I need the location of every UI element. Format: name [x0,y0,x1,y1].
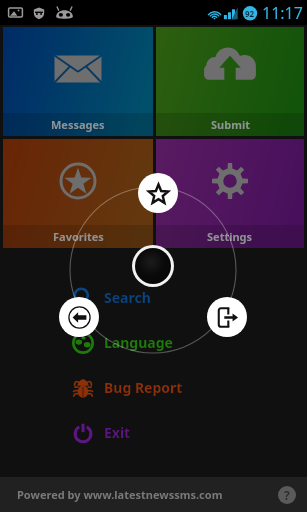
button[interactable]: Search [0,275,307,320]
staticText: Messages [51,117,105,132]
staticText: Bug Report [104,378,183,397]
button[interactable]: Close menu [132,245,174,287]
staticText: Settings [207,229,253,244]
button[interactable]: Messages [3,27,153,136]
staticText: Submit [211,117,250,132]
staticText: Language [104,333,173,352]
button[interactable]: Language [0,320,307,365]
button[interactable]: Log out [207,297,247,337]
button[interactable]: Help [278,486,296,504]
staticText: Favorites [53,229,104,244]
button[interactable]: Bug Report [0,365,307,410]
button[interactable]: Back [59,297,99,337]
staticText: Exit [104,423,131,442]
button[interactable]: Submit [156,27,304,136]
button[interactable]: Exit [0,410,307,455]
staticText: 11:17 [262,2,303,24]
staticText: ? [284,487,290,503]
button[interactable]: Settings [156,139,304,248]
button[interactable]: Favorite [138,173,178,213]
staticText: Search [104,288,151,307]
staticText: 92 [245,8,255,19]
staticText: Powered by www.latestnewssms.com [17,487,223,502]
button[interactable]: Favorites [3,139,153,248]
